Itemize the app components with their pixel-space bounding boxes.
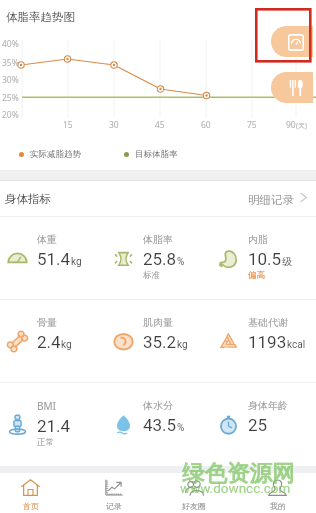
button[interactable]: 记录 [77,473,149,513]
staticText: 75 [247,119,257,131]
staticText: 1193 [248,332,287,352]
staticText: 43.5 [143,415,177,435]
button[interactable]: 体脂秤 [271,26,313,57]
staticText: 2.4 [37,332,61,352]
staticText: kg [71,256,82,268]
staticText: kcal [287,339,306,351]
staticText: (天) [296,121,308,131]
staticText: 体水分 [143,399,173,412]
staticText: 肌肉量 [143,316,173,329]
button[interactable]: 身体指标 [0,181,316,216]
button[interactable]: 肌肉量 [106,300,211,382]
staticText: 90 [286,119,296,131]
staticText: 体脂率 [143,233,173,246]
staticText: 目标体脂率 [135,149,178,160]
staticText: 偏高 [248,270,265,281]
button[interactable]: 体重 [0,217,106,299]
staticText: 首页 [23,501,39,511]
staticText: 身体年龄 [248,399,288,412]
staticText: 51.4 [37,249,71,269]
button[interactable]: 好友圈 [158,473,230,513]
staticText: 标准 [143,270,160,281]
staticText: 30% [2,74,19,86]
staticText: 绿色资源网 [182,459,295,487]
button[interactable]: 我的 [241,473,313,513]
button[interactable]: 饮食记录 [271,72,313,103]
staticText: 10.5 [248,249,282,269]
staticText: 正常 [37,437,54,448]
staticText: BMI [37,399,56,413]
staticText: 我的 [270,501,286,511]
staticText: 20% [2,109,19,121]
button[interactable]: 内脂 [211,217,316,299]
staticText: 骨量 [37,316,57,329]
staticText: % [177,256,185,268]
staticText: % [177,422,185,434]
staticText: 级 [282,255,292,268]
staticText: 60 [201,119,211,131]
button[interactable]: 体水分 [106,383,211,465]
staticText: 实际减脂趋势 [30,149,81,160]
button[interactable]: 身体年龄 [211,383,316,465]
staticText: www.downcc.com [180,480,291,496]
button[interactable]: 骨量 [0,300,106,382]
staticText: 基础代谢 [248,316,288,329]
staticText: 记录 [106,501,122,511]
staticText: 体重 [37,233,57,246]
staticText: kg [177,339,188,351]
staticText: 45 [155,119,165,131]
staticText: 35% [2,57,19,69]
staticText: 15 [63,119,73,131]
staticText: 明细记录 [248,193,294,207]
staticText: kg [61,339,72,351]
button[interactable]: BMI [0,383,106,465]
staticText: 25% [2,92,19,104]
staticText: 25 [248,415,268,435]
staticText: 好友圈 [182,501,206,511]
staticText: 30 [109,119,119,131]
staticText: 35.2 [143,332,177,352]
button[interactable]: 基础代谢 [211,300,316,382]
staticText: 25.8 [143,249,177,269]
staticText: 21.4 [37,416,71,436]
staticText: 40% [2,38,19,50]
staticText: 体脂率趋势图 [6,10,75,24]
staticText: 身体指标 [5,192,51,206]
button[interactable]: 体脂率 [106,217,211,299]
staticText: 内脂 [248,233,268,246]
button[interactable]: 首页 [0,473,66,513]
